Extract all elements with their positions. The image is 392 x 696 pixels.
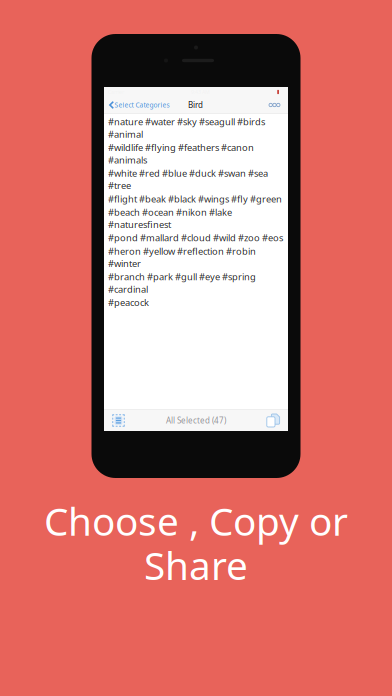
staticText: #white #red #blue #duck #swan #sea #tree bbox=[108, 167, 268, 192]
staticText: #flight #beak #black #wings #fly #green bbox=[108, 193, 282, 205]
staticText: Share bbox=[144, 539, 248, 591]
staticText: Select Categories bbox=[115, 101, 170, 109]
button[interactable]: Select Categories bbox=[106, 99, 188, 111]
staticText: #wildlife #flying #feathers #canon #anim… bbox=[108, 141, 254, 166]
button[interactable]: More options bbox=[265, 99, 286, 111]
button[interactable]: Select all bbox=[108, 412, 129, 429]
staticText: #heron #yellow #reflection #robin #winte… bbox=[108, 245, 256, 270]
staticText: #peacock bbox=[108, 296, 149, 309]
staticText: All Selected (47) bbox=[166, 415, 226, 426]
staticText: #pond #mallard #cloud #wild #zoo #eos bbox=[108, 231, 283, 244]
staticText: Choose , Copy or bbox=[44, 495, 348, 546]
button[interactable]: Copy bbox=[263, 410, 284, 431]
staticText: #beach #ocean #nikon #lake #naturesfines… bbox=[108, 206, 232, 231]
staticText: #branch #park #gull #eye #spring #cardin… bbox=[108, 270, 256, 295]
staticText: #nature #water #sky #seagull #birds #ani… bbox=[108, 115, 265, 140]
staticText: Bird bbox=[188, 100, 203, 110]
